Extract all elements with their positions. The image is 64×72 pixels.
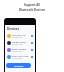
- staticText: Connected: [12, 36, 23, 39]
- staticText: Support All Bluetooth Devices: [0, 3, 64, 12]
- button[interactable]: Beats Studio: [5, 46, 35, 53]
- button[interactable]: Sony WH-1000: [5, 53, 35, 60]
- button[interactable]: Connect: [6, 63, 31, 68]
- staticText: Connected: [12, 50, 23, 53]
- staticText: Beats Studio: [12, 47, 27, 50]
- staticText: Sony WH-1000: [12, 54, 29, 57]
- staticText: Connected: [12, 43, 23, 46]
- staticText: Galaxy Buds: [12, 40, 27, 43]
- button[interactable]: Galaxy Buds: [5, 39, 35, 46]
- staticText: Connect: [14, 64, 24, 67]
- staticText: AirPods Pro: [12, 33, 26, 36]
- staticText: Devices: [7, 27, 20, 31]
- staticText: Connected: [12, 57, 23, 60]
- button[interactable]: AirPods Pro: [5, 32, 35, 39]
